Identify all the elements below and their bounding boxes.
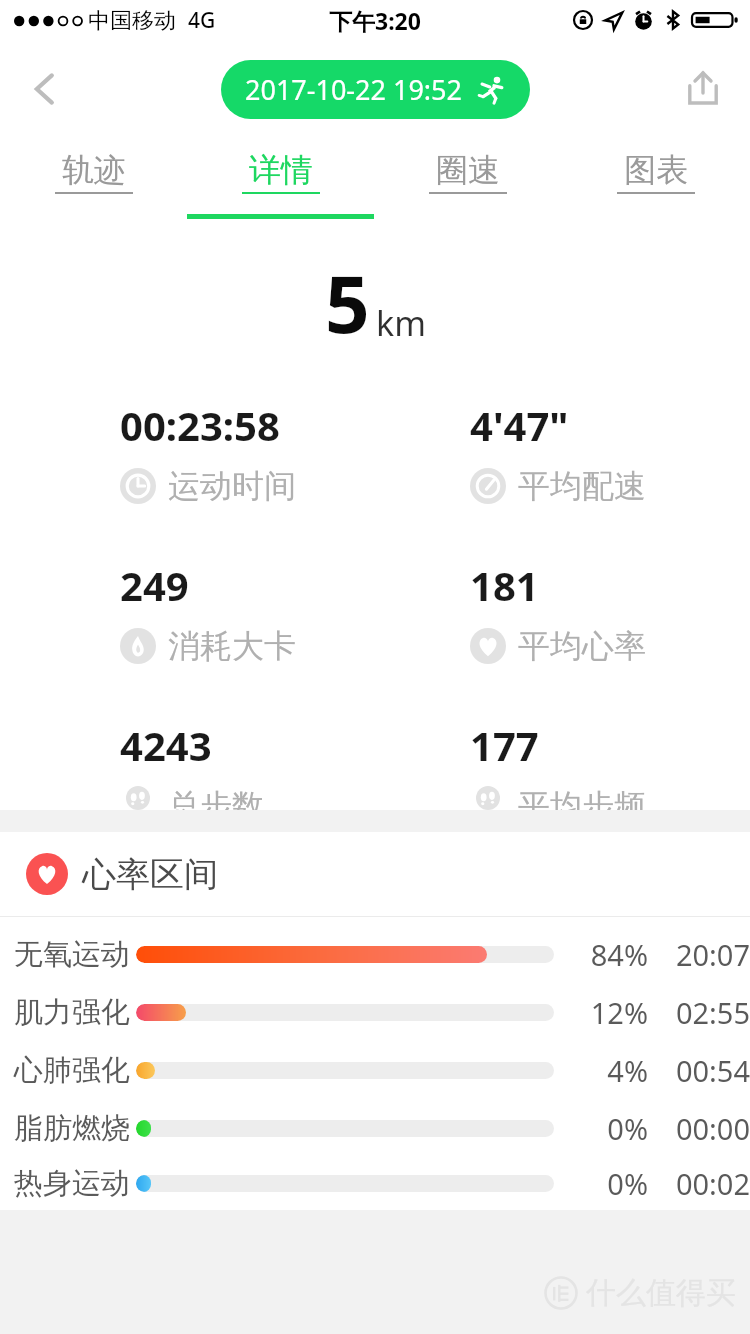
staticText: 心肺强化 [14, 1052, 130, 1089]
staticText: 4'47" [470, 398, 569, 452]
staticText: 4G [188, 6, 216, 35]
staticText: 00:23:58 [120, 398, 280, 452]
button[interactable]: 249 [120, 558, 375, 666]
button[interactable]: 2017-10-22 19:52 [221, 60, 530, 119]
button[interactable]: 无氧运动 [0, 925, 750, 983]
staticText: 249 [120, 558, 189, 612]
button[interactable]: 心率区间 [0, 832, 750, 916]
staticText: 平均配速 [518, 466, 646, 506]
staticText: 20:07 [658, 935, 750, 974]
staticText: 下午3:20 [329, 5, 421, 36]
staticText: 平均心率 [518, 626, 646, 666]
staticText: 详情 [249, 150, 313, 190]
staticText: 热身运动 [14, 1165, 130, 1202]
button[interactable]: 脂肪燃烧 [0, 1099, 750, 1157]
button[interactable]: 181 [470, 558, 750, 666]
staticText: 2017-10-22 19:52 [245, 71, 462, 108]
staticText: 0% [570, 1109, 648, 1148]
staticText: 总步数 [168, 786, 264, 810]
button[interactable]: 分享 [672, 58, 734, 120]
staticText: 脂肪燃烧 [14, 1110, 130, 1147]
button[interactable]: 热身运动 [0, 1157, 750, 1210]
staticText: 平均步频 [518, 786, 646, 810]
button[interactable]: 4243 [120, 718, 375, 810]
staticText: 181 [470, 558, 539, 612]
staticText: 中国移动 [88, 7, 176, 35]
button[interactable]: 心肺强化 [0, 1041, 750, 1099]
staticText: 177 [470, 718, 539, 772]
button[interactable]: 00:23:58 [120, 398, 375, 506]
staticText: 轨迹 [62, 150, 126, 190]
staticText: 12% [570, 993, 648, 1032]
button[interactable]: 返回 [14, 58, 76, 120]
staticText: 02:55 [658, 993, 750, 1032]
staticText: 无氧运动 [14, 936, 130, 973]
staticText: 5 [325, 250, 370, 356]
button[interactable]: 图表 [562, 138, 750, 220]
staticText: 4% [570, 1051, 648, 1090]
staticText: 4243 [120, 718, 212, 772]
staticText: 84% [570, 935, 648, 974]
staticText: 00:00 [658, 1109, 750, 1148]
staticText: 图表 [624, 150, 688, 190]
staticText: 运动时间 [168, 466, 296, 506]
button[interactable]: 轨迹 [0, 138, 187, 220]
button[interactable]: 4'47" [470, 398, 750, 506]
staticText: 肌力强化 [14, 994, 130, 1031]
staticText: 圈速 [436, 150, 500, 190]
staticText: 什么值得买 [586, 1274, 736, 1312]
staticText: 消耗大卡 [168, 626, 296, 666]
staticText: 00:02 [658, 1164, 750, 1203]
staticText: km [376, 300, 426, 346]
button[interactable]: 177 [470, 718, 750, 810]
button[interactable]: 详情 [187, 138, 374, 220]
staticText: 0% [570, 1164, 648, 1203]
staticText: 00:54 [658, 1051, 750, 1090]
staticText: 心率区间 [82, 853, 218, 896]
button[interactable]: 圈速 [374, 138, 562, 220]
button[interactable]: 肌力强化 [0, 983, 750, 1041]
